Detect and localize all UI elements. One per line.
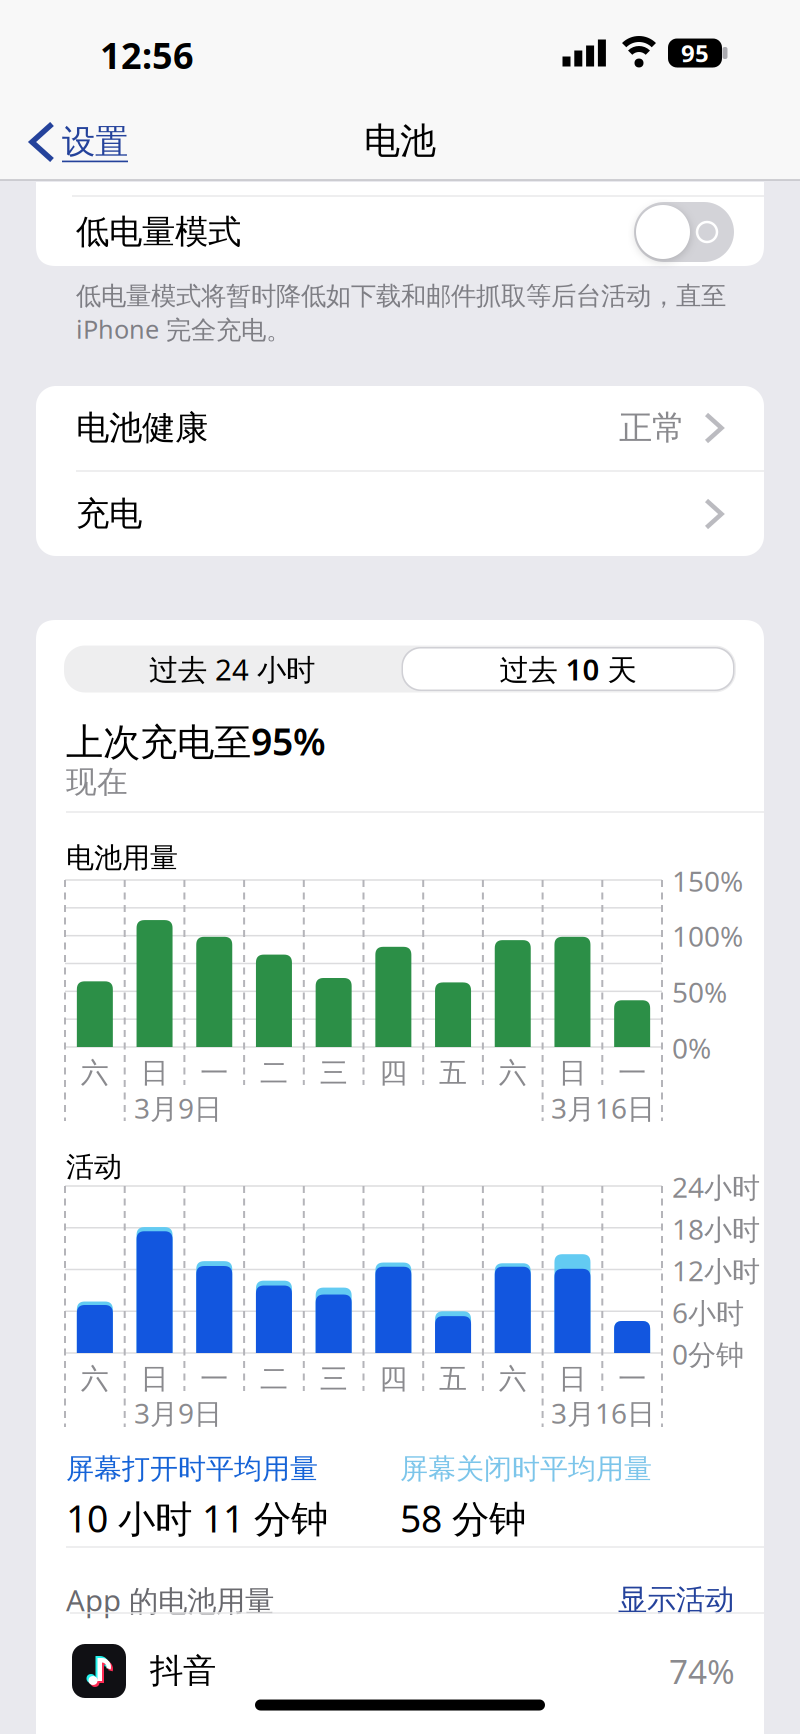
staticText: 五	[439, 1362, 467, 1396]
staticText: 现在	[66, 763, 128, 801]
button[interactable]: 过去 10 天	[401, 647, 734, 691]
staticText: 12:56	[100, 31, 194, 79]
staticText: 正常	[619, 407, 685, 448]
staticText: 六	[499, 1056, 527, 1090]
staticText: 四	[379, 1056, 407, 1090]
staticText: 3月16日	[551, 1089, 655, 1127]
staticText: 3月9日	[134, 1089, 222, 1127]
staticText: 二	[260, 1362, 288, 1396]
staticText: 三	[320, 1056, 348, 1090]
staticText: 3月9日	[134, 1394, 222, 1432]
staticText: 过去 10 天	[499, 649, 636, 688]
staticText: 日	[141, 1056, 169, 1090]
staticText: 三	[320, 1362, 348, 1396]
staticText: 显示活动	[618, 1582, 734, 1618]
staticText: 低电量模式	[76, 211, 241, 252]
staticText: 二	[260, 1056, 288, 1090]
staticText: 电池	[364, 119, 436, 163]
staticText: 六	[81, 1362, 109, 1396]
staticText: 日	[141, 1362, 169, 1396]
staticText: 抖音	[150, 1650, 216, 1691]
button[interactable]: 充电	[36, 472, 764, 556]
button[interactable]: 显示活动	[618, 1582, 734, 1618]
staticText: 100%	[672, 917, 743, 955]
staticText: 50%	[672, 973, 727, 1011]
staticText: 0分钟	[672, 1335, 744, 1373]
staticText: 一	[200, 1362, 228, 1396]
staticText: 五	[439, 1056, 467, 1090]
staticText: 屏幕打开时平均用量	[66, 1452, 318, 1486]
staticText: 18小时	[672, 1210, 760, 1248]
staticText: 上次充电至95%	[66, 716, 326, 766]
staticText: 12小时	[672, 1252, 760, 1289]
staticText: 低电量模式将暂时降低如下载和邮件抓取等后台活动，直至	[76, 280, 726, 311]
staticText: 0%	[672, 1029, 711, 1067]
staticText: iPhone 完全充电。	[76, 312, 291, 346]
staticText: 四	[379, 1362, 407, 1396]
staticText: 活动	[66, 1150, 122, 1184]
button[interactable]	[67, 646, 397, 692]
staticText: 150%	[672, 862, 743, 900]
staticText: 10 小时 11 分钟	[66, 1493, 328, 1543]
staticText: 六	[81, 1056, 109, 1090]
staticText: 过去 24 小时	[149, 649, 315, 688]
staticText: 电池健康	[76, 407, 208, 448]
staticText: App 的电池用量	[66, 1580, 274, 1619]
staticText: 日	[558, 1056, 586, 1090]
staticText: 六	[499, 1362, 527, 1396]
button[interactable]: 设置	[32, 121, 128, 162]
staticText: 设置	[62, 121, 128, 162]
staticText: 24小时	[672, 1168, 760, 1206]
button[interactable]: 低电量模式	[36, 197, 764, 265]
staticText: 日	[558, 1362, 586, 1396]
staticText: 95	[681, 37, 709, 69]
staticText: 屏幕关闭时平均用量	[400, 1452, 652, 1486]
staticText: 6小时	[672, 1294, 744, 1331]
staticText: 58 分钟	[400, 1493, 526, 1543]
staticText: 一	[200, 1056, 228, 1090]
button[interactable]: 抖音	[36, 1612, 764, 1732]
staticText: 一	[618, 1362, 646, 1396]
staticText: 充电	[76, 493, 142, 534]
button[interactable]: 电池健康	[36, 386, 764, 470]
staticText: 电池用量	[66, 841, 178, 875]
staticText: 一	[618, 1056, 646, 1090]
staticText: 3月16日	[551, 1394, 655, 1432]
staticText: 74%	[669, 1649, 735, 1693]
